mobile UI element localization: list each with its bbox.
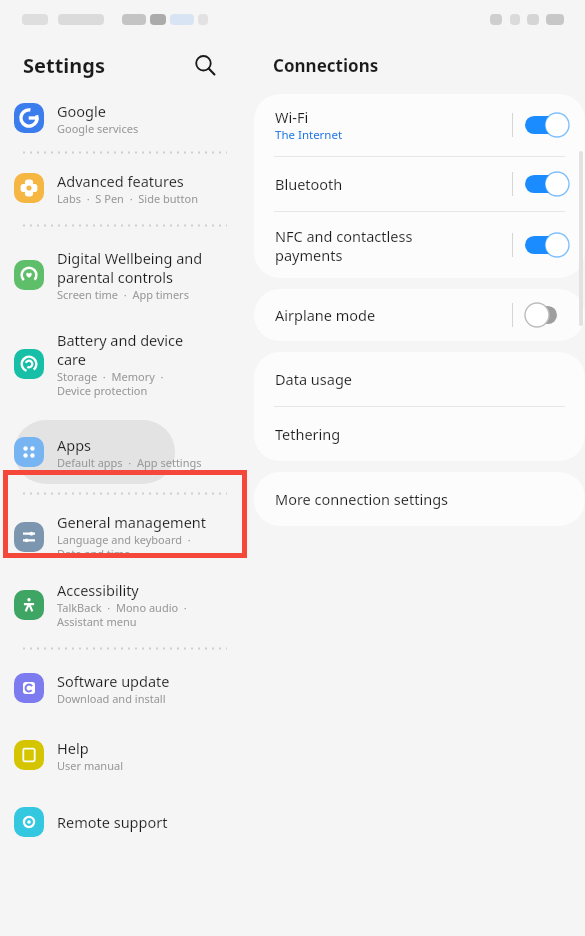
button[interactable]: Wi-Fi toggle xyxy=(525,112,565,138)
staticText: More connection settings xyxy=(275,489,448,509)
staticText: Advanced features xyxy=(57,171,184,191)
staticText: Google services xyxy=(57,121,139,136)
staticText: Google xyxy=(57,101,106,121)
button[interactable]: Airplane mode toggle xyxy=(525,302,565,328)
staticText: Remote support xyxy=(57,812,168,832)
staticText: General management xyxy=(57,512,207,532)
staticText: Connections xyxy=(273,54,379,77)
button[interactable]: Digital Wellbeing and parental controls xyxy=(0,238,245,312)
staticText: Apps xyxy=(57,435,92,455)
staticText: Digital Wellbeing and parental controls xyxy=(57,248,203,287)
staticText: Wi-Fi xyxy=(275,107,309,127)
button[interactable] xyxy=(14,420,175,484)
button[interactable]: Tethering xyxy=(254,407,585,461)
staticText: Bluetooth xyxy=(275,174,343,194)
staticText: NFC and contactless payments xyxy=(275,226,413,265)
button[interactable]: Battery and device care xyxy=(0,320,245,408)
staticText: Battery and device care xyxy=(57,330,184,369)
staticText: Tethering xyxy=(275,424,341,444)
staticText: Labs · S Pen · Side button xyxy=(57,191,198,206)
button[interactable]: Remote support xyxy=(0,797,245,847)
button[interactable]: Wi-Fi xyxy=(254,94,585,156)
button[interactable]: Apps xyxy=(0,420,245,484)
button[interactable]: Advanced features xyxy=(0,163,245,213)
button[interactable]: Bluetooth xyxy=(254,157,585,211)
button[interactable]: Software update xyxy=(0,663,245,713)
button[interactable]: Airplane mode xyxy=(254,289,585,341)
staticText: Download and install xyxy=(57,691,166,706)
button[interactable]: General management xyxy=(0,506,245,568)
staticText: Help xyxy=(57,738,89,758)
staticText: User manual xyxy=(57,758,123,773)
button[interactable]: Bluetooth toggle xyxy=(525,171,565,197)
staticText: Airplane mode xyxy=(275,305,376,325)
staticText: Default apps · App settings xyxy=(57,455,202,470)
button[interactable]: Search xyxy=(187,47,223,83)
staticText: Screen time · App timers xyxy=(57,287,189,302)
button[interactable]: More connection settings xyxy=(254,472,585,526)
button[interactable]: NFC and contactless payments xyxy=(254,212,585,278)
staticText: The Internet xyxy=(275,127,343,143)
button[interactable]: Google xyxy=(0,94,245,142)
staticText: Accessibility xyxy=(57,580,139,600)
button[interactable]: Data usage xyxy=(254,352,585,406)
staticText: Storage · Memory · Device protection xyxy=(57,369,164,399)
button[interactable]: NFC and contactless payments toggle xyxy=(525,232,565,258)
button[interactable]: Help xyxy=(0,730,245,780)
button[interactable]: Accessibility xyxy=(0,574,245,636)
staticText: Language and keyboard · Date and time xyxy=(57,532,191,562)
staticText: TalkBack · Mono audio · Assistant menu xyxy=(57,600,187,630)
staticText: Data usage xyxy=(275,369,352,389)
staticText: Settings xyxy=(23,52,105,79)
staticText: Software update xyxy=(57,671,170,691)
